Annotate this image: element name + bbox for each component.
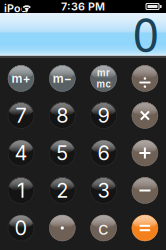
button[interactable]: 9 — [91, 102, 117, 128]
staticText: 0 — [14, 216, 27, 240]
button[interactable]: 6 — [91, 140, 117, 166]
button[interactable]: Memory subtract — [49, 65, 75, 91]
staticText: 7:36 PM — [61, 0, 105, 13]
button[interactable]: Add — [132, 140, 158, 166]
staticText: 5 — [56, 141, 68, 165]
staticText: 6 — [98, 141, 110, 165]
staticText: 9 — [98, 103, 110, 128]
staticText: m− — [53, 71, 72, 86]
button[interactable]: Clear — [91, 215, 117, 241]
staticText: 1 — [17, 178, 25, 203]
button[interactable]: 4 — [8, 140, 34, 166]
staticText: mr — [97, 67, 110, 78]
button[interactable]: Decimal point — [49, 215, 75, 241]
button[interactable]: 2 — [49, 177, 75, 203]
button[interactable]: Subtract — [132, 177, 158, 203]
button[interactable]: 3 — [91, 177, 117, 203]
button[interactable]: 8 — [49, 102, 75, 128]
button[interactable]: 1 — [8, 177, 34, 203]
button[interactable]: Multiply — [132, 102, 158, 128]
button[interactable]: Equals — [132, 215, 158, 241]
staticText: 7 — [15, 103, 26, 128]
staticText: mc — [97, 78, 111, 90]
staticText: 3 — [98, 178, 110, 203]
button[interactable]: 5 — [49, 140, 75, 166]
button[interactable]: 7 — [8, 102, 34, 128]
button[interactable]: 0 — [8, 215, 34, 241]
button[interactable]: Memory add — [8, 65, 34, 91]
staticText: m+ — [11, 71, 30, 86]
staticText: 0 — [133, 0, 159, 64]
staticText: iPod — [4, 2, 28, 15]
staticText: 8 — [56, 103, 68, 128]
button[interactable]: Divide — [132, 65, 158, 91]
staticText: 4 — [14, 141, 27, 165]
staticText: c — [98, 217, 109, 239]
staticText: 2 — [56, 178, 68, 203]
button[interactable]: Memory recall and clear — [91, 65, 117, 91]
